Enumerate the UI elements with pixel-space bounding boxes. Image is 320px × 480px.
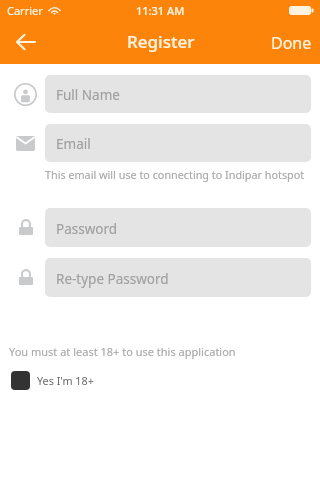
- staticText: Password: [56, 220, 118, 238]
- staticText: This email will use to connecting to Ind…: [45, 167, 320, 182]
- staticText: You must at least 18+ to use this applic…: [9, 344, 236, 359]
- button[interactable]: Done: [257, 24, 320, 62]
- button[interactable]: Email: [45, 124, 311, 162]
- staticText: Re-type Password: [56, 270, 169, 288]
- staticText: Full Name: [56, 86, 120, 104]
- staticText: 11:31 AM: [136, 3, 185, 18]
- button[interactable]: Back: [8, 25, 42, 59]
- staticText: Register: [127, 30, 195, 53]
- button[interactable]: Password: [45, 208, 311, 247]
- button[interactable]: Re-type Password: [45, 258, 311, 297]
- button[interactable]: Full Name: [45, 75, 311, 113]
- staticText: Carrier: [7, 3, 43, 18]
- staticText: Done: [271, 32, 312, 54]
- staticText: Email: [56, 135, 91, 153]
- staticText: Yes I'm 18+: [37, 373, 94, 388]
- button[interactable]: Yes I'm 18+: [11, 371, 94, 390]
